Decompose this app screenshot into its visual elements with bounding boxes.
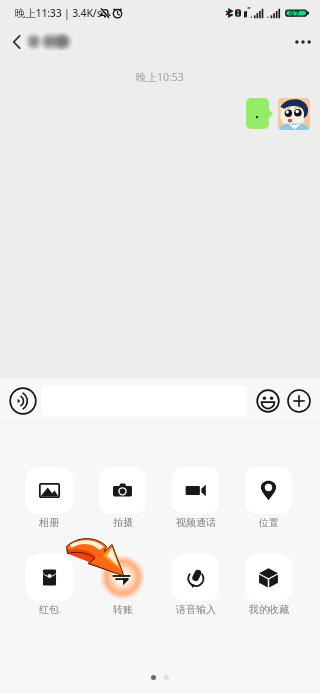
button[interactable]: 位置 [232, 467, 305, 529]
button[interactable]: 我的收藏 [232, 554, 305, 616]
staticText: 拍摄 [113, 516, 133, 529]
button[interactable]: 红包 [12, 554, 86, 616]
button[interactable]: 视频通话 [159, 467, 232, 529]
staticText: 晚上11:33 | 3.4K/s [15, 6, 102, 20]
button[interactable]: Back [0, 25, 34, 58]
button[interactable]: 转账 [86, 554, 159, 616]
staticText: 晚上10:53 [136, 70, 184, 84]
button[interactable] [278, 98, 310, 130]
staticText: 转账 [113, 603, 133, 616]
staticText: 相册 [39, 516, 59, 529]
button[interactable]: 相册 [12, 467, 86, 529]
button[interactable]: Emoji [256, 389, 280, 413]
button[interactable]: 拍摄 [86, 467, 159, 529]
button[interactable]: Voice input [9, 387, 37, 415]
staticText: 视频通话 [176, 516, 216, 529]
button[interactable] [246, 98, 273, 129]
staticText: 位置 [259, 516, 279, 529]
staticText: 红包 [39, 603, 59, 616]
button[interactable]: 语音输入 [159, 554, 232, 616]
button[interactable]: More options [286, 25, 320, 58]
button[interactable]: More [287, 389, 311, 413]
staticText: 我的收藏 [249, 603, 289, 616]
staticText: 语音输入 [176, 603, 216, 616]
staticText: 97 [289, 7, 300, 19]
